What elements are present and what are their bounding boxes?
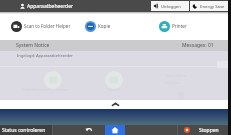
- button[interactable]: Expand: [0, 100, 231, 109]
- button[interactable]: System Notice: [0, 40, 231, 51]
- staticText: Scan to Folder Helper: [24, 23, 71, 29]
- button[interactable]: Scan to Folder Helper: [6, 18, 77, 34]
- button[interactable]: Stoppen: [178, 125, 219, 135]
- staticText: Messages: 01: [182, 42, 214, 49]
- button[interactable]: Printer: [154, 18, 225, 34]
- staticText: Energy Save: [200, 3, 225, 9]
- button[interactable]: Home: [105, 125, 125, 135]
- button[interactable]: Status controleren: [0, 125, 52, 135]
- staticText: Status controleren: [2, 127, 46, 134]
- button[interactable]: Energy Save: [190, 1, 228, 11]
- staticText: Printer: [107, 87, 120, 92]
- button[interactable]: Back: [83, 125, 95, 135]
- staticText: System Notice: [16, 42, 50, 49]
- staticText: Ingelogd: Apparaatbeheerder: [17, 53, 73, 58]
- button[interactable]: Kopie: [80, 18, 151, 34]
- staticText: Apparaatbeheerder: [27, 3, 74, 10]
- staticText: Afdrukken snel in beeren: [22, 87, 70, 92]
- button[interactable]: Apparaatbeheerder: [19, 0, 74, 12]
- staticText: Uitloggen: [161, 3, 181, 9]
- staticText: Printer: [172, 23, 187, 29]
- staticText: Stoppen: [199, 127, 219, 134]
- button[interactable]: Uitloggen: [151, 1, 189, 11]
- staticText: Kopie: [98, 23, 111, 29]
